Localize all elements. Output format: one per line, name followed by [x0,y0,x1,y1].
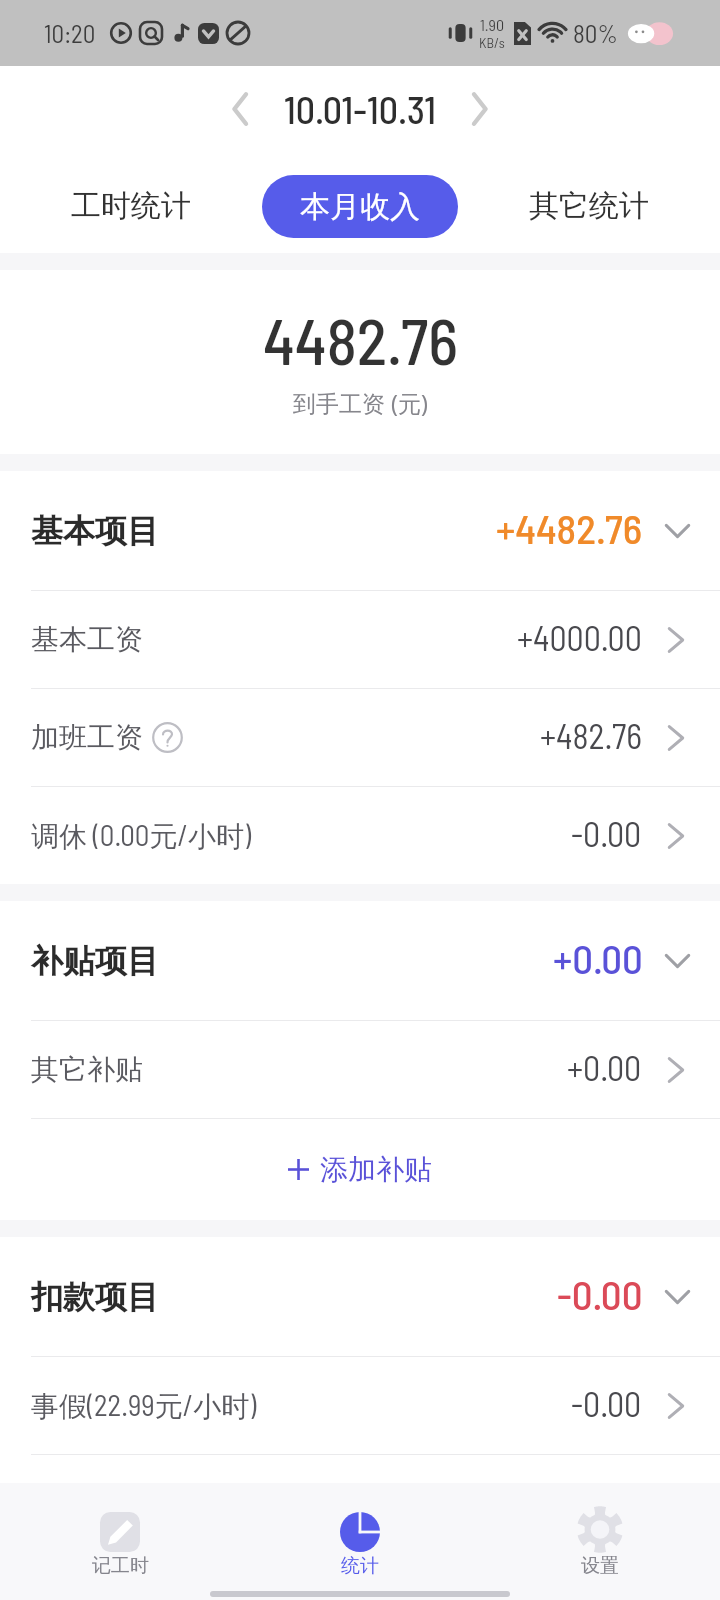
staticText: +0.00 [567,1047,642,1088]
staticText: 80% [573,18,618,48]
staticText: 记工时 [92,1554,149,1578]
staticText: 扣款项目 [31,1277,159,1317]
button[interactable]: 扣款项目 [0,1237,720,1356]
staticText: 4482.76 [263,302,458,378]
staticText: 添加补贴 [320,1152,432,1187]
button[interactable]: 加班工资 [0,689,720,786]
staticText: 事假(22.99元/小时) [31,1387,257,1424]
button[interactable]: Record work hours [0,1483,240,1600]
button[interactable]: Previous period [213,82,267,136]
button[interactable]: Statistics [240,1483,480,1600]
button[interactable]: 调休 (0.00元/小时) [0,787,720,884]
staticText: 加班工资 [31,720,143,755]
staticText: -0.00 [571,813,642,854]
staticText: +4482.76 [496,503,643,552]
staticText: -0.00 [571,1383,642,1424]
staticText: 到手工资 (元) [293,387,428,418]
staticText: 补贴项目 [31,941,159,981]
other: Settings [580,1512,620,1552]
staticText: -0.00 [557,1269,643,1318]
button[interactable]: Settings [480,1483,720,1600]
staticText: +4000.00 [517,617,642,658]
staticText: 其它统计 [529,187,649,225]
staticText: 设置 [581,1554,619,1578]
button[interactable]: 添加补贴 [0,1119,720,1220]
button[interactable]: 事假(22.99元/小时) [0,1357,720,1454]
button[interactable]: 工时统计 [0,155,262,257]
staticText: 10.01-10.31 [284,86,436,132]
staticText: 工时统计 [71,187,191,225]
button[interactable]: 基本工资 [0,591,720,688]
staticText: +0.00 [553,933,643,982]
staticText: 本月收入 [300,188,420,226]
button[interactable]: 补贴项目 [0,901,720,1020]
other: Statistics [340,1512,380,1552]
button[interactable]: 其它统计 [458,155,720,257]
staticText: +482.76 [540,715,642,756]
staticText: 统计 [341,1554,379,1578]
staticText: 10:20 [44,18,96,48]
staticText: 基本项目 [31,511,159,551]
button[interactable]: 其它补贴 [0,1021,720,1118]
button[interactable]: 基本项目 [0,471,720,590]
staticText: 基本工资 [31,622,143,657]
button[interactable]: 本月收入 [262,175,458,238]
other: Record work hours [100,1512,140,1552]
staticText: KB/s [479,34,505,51]
button[interactable]: Next period [453,82,507,136]
button[interactable]: Help about overtime pay [152,722,183,753]
staticText: 1.90 [480,15,505,34]
staticText: 调休 (0.00元/小时) [31,817,252,854]
staticText: 其它补贴 [31,1052,143,1087]
